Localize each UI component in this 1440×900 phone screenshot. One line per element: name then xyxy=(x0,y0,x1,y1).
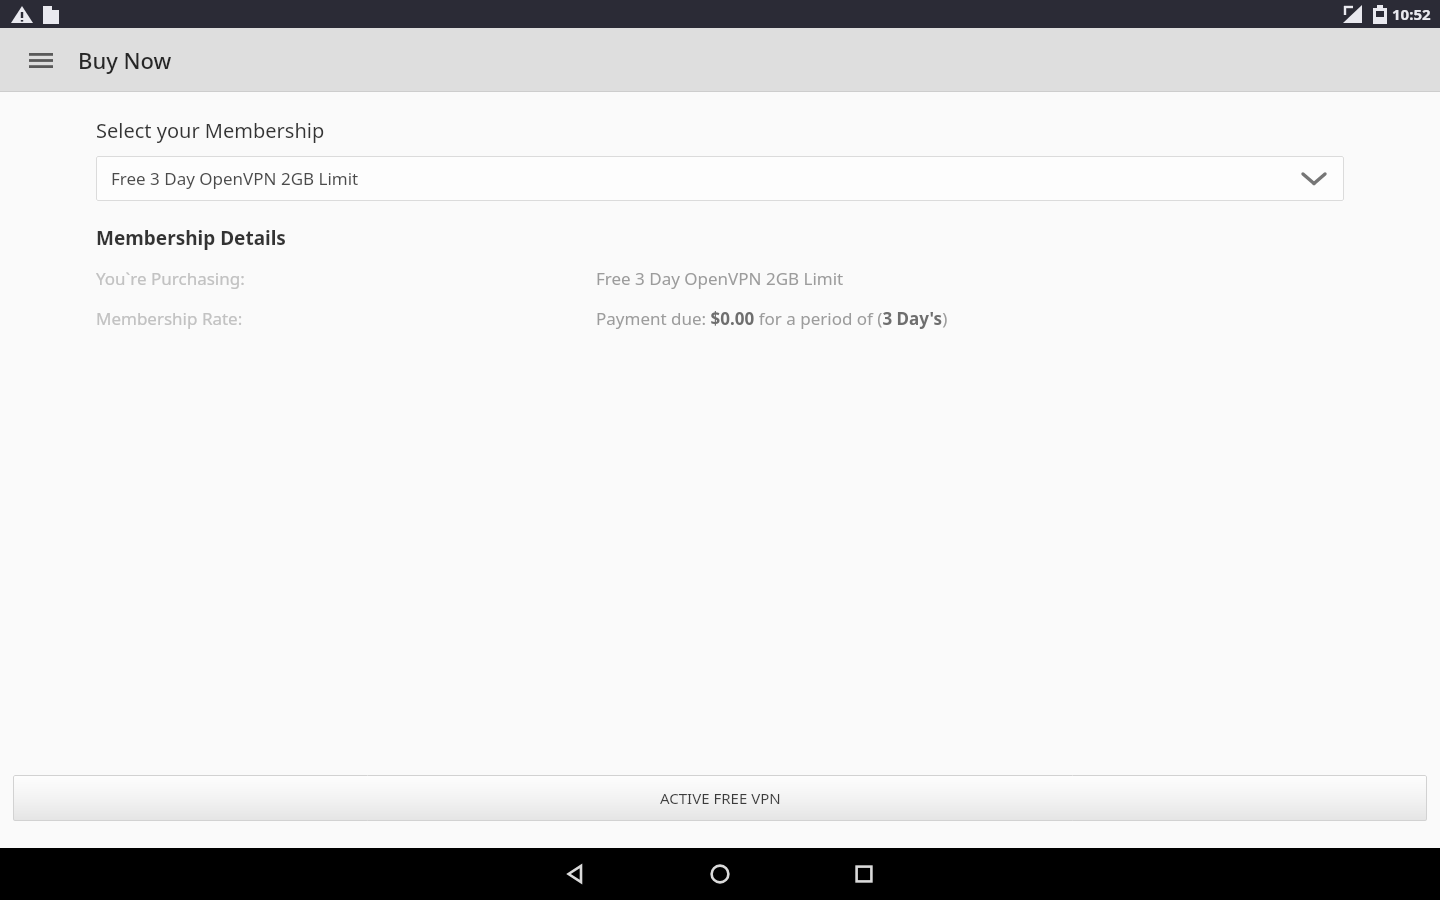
staticText: Select your Membership xyxy=(96,117,325,144)
button[interactable]: ACTIVE FREE VPN xyxy=(13,775,1427,821)
staticText: Free 3 Day OpenVPN 2GB Limit xyxy=(596,267,844,290)
button[interactable]: Free 3 Day OpenVPN 2GB Limit xyxy=(96,156,1344,201)
staticText: You`re Purchasing: xyxy=(96,267,245,290)
button[interactable]: Open navigation drawer xyxy=(17,36,65,84)
button[interactable]: Home xyxy=(684,848,756,900)
button[interactable]: Recent apps xyxy=(828,848,900,900)
staticText: 10:52 xyxy=(1392,4,1431,24)
staticText: Membership Rate: xyxy=(96,307,243,330)
staticText: Membership Details xyxy=(96,225,286,251)
button[interactable]: Back xyxy=(540,848,612,900)
staticText: Buy Now xyxy=(78,45,172,75)
staticText: Free 3 Day OpenVPN 2GB Limit xyxy=(111,167,359,190)
staticText: Payment due: $0.00 for a period of (3 Da… xyxy=(596,307,948,330)
staticText: ACTIVE FREE VPN xyxy=(660,788,781,808)
